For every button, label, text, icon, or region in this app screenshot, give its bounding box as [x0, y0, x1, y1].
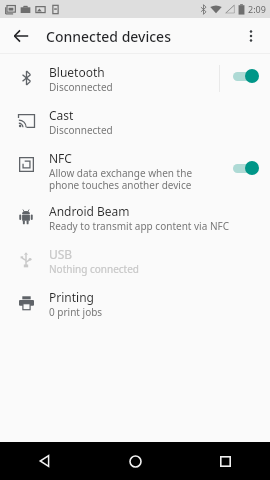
staticText: Disconnected [49, 123, 113, 137]
staticText: 0 print jobs [49, 305, 103, 319]
button[interactable]: Home [90, 442, 180, 480]
button[interactable]: USB [0, 233, 270, 276]
button[interactable]: More options [237, 22, 265, 50]
staticText: NFC [49, 150, 72, 166]
staticText: Ready to transmit app content via NFC [49, 219, 229, 233]
button[interactable]: Recents [180, 442, 270, 480]
button[interactable]: Printing [0, 276, 270, 319]
staticText: Cast [49, 107, 74, 123]
button[interactable]: Back [0, 442, 90, 480]
button[interactable]: Bluetooth toggle [231, 69, 260, 83]
staticText: Disconnected [49, 80, 113, 94]
staticText: USB [49, 246, 73, 262]
button[interactable]: NFC [0, 137, 270, 192]
staticText: Allow data exchange when the phone touch… [49, 166, 219, 192]
button[interactable]: Cast [0, 94, 270, 137]
staticText: Connected devices [46, 27, 171, 46]
button[interactable]: Back [6, 21, 36, 51]
button[interactable]: NFC toggle [231, 161, 260, 175]
button[interactable]: Android Beam [0, 192, 270, 233]
staticText: Printing [49, 289, 94, 305]
staticText: Nothing connected [49, 262, 139, 276]
staticText: Android Beam [49, 203, 130, 219]
staticText: 2:09 [248, 3, 266, 15]
staticText: Bluetooth [49, 64, 105, 80]
button[interactable]: Bluetooth [0, 54, 270, 94]
